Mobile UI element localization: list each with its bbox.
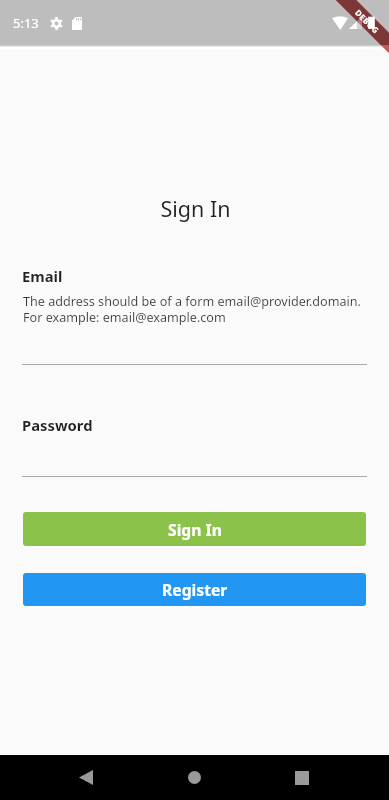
button[interactable]: Sign In: [23, 512, 366, 546]
staticText: 5:13: [13, 14, 39, 32]
staticText: The address should be of a form email@pr…: [23, 293, 361, 325]
staticText: Email: [22, 266, 63, 286]
staticText: Register: [162, 579, 228, 600]
button[interactable]: Recents: [273, 755, 331, 800]
staticText: Sign In: [168, 519, 222, 540]
staticText: Password: [22, 415, 93, 435]
button[interactable]: Home: [165, 755, 223, 800]
button[interactable]: Register: [23, 573, 366, 606]
staticText: Sign In: [1, 194, 389, 223]
button[interactable]: Back: [57, 755, 115, 800]
